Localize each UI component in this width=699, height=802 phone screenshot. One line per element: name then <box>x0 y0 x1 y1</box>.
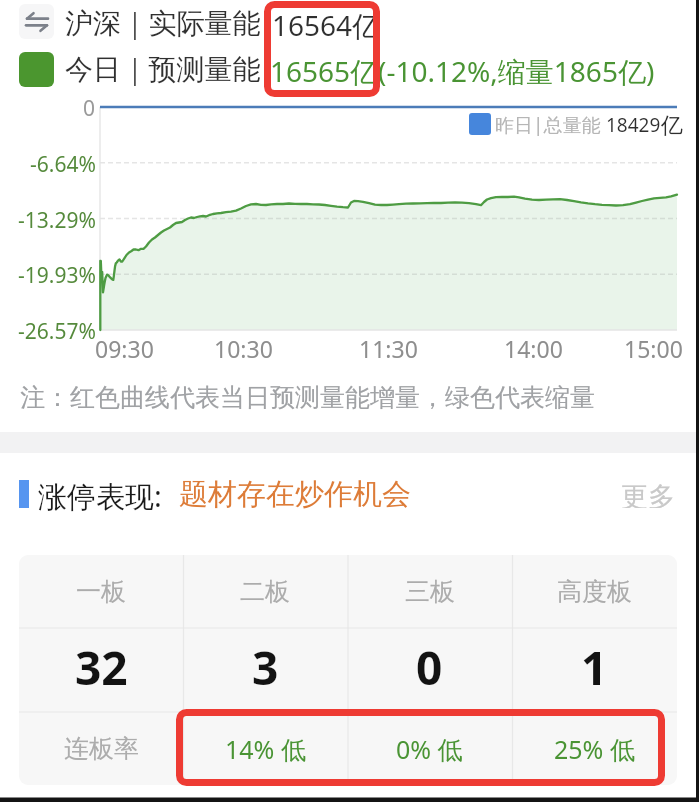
staticText: 0 <box>83 94 96 123</box>
button[interactable]: Switch market <box>19 4 54 39</box>
staticText: 0% 低 <box>396 732 463 766</box>
staticText: 二板 <box>240 576 290 607</box>
staticText: 32 <box>75 636 128 699</box>
staticText: 三板 <box>405 576 455 607</box>
staticText: 注：红色曲线代表当日预测量能增量，绿色代表缩量 <box>20 382 595 413</box>
staticText: 14:00 <box>504 333 563 364</box>
staticText: 09:30 <box>95 333 154 364</box>
staticText: 一板 <box>76 576 126 607</box>
staticText: 更多 <box>621 480 675 508</box>
button[interactable]: 三板 <box>347 555 512 628</box>
staticText: 18429 <box>606 112 661 136</box>
button[interactable]: 高度板 <box>512 555 677 628</box>
staticText: 3 <box>252 636 279 699</box>
button[interactable]: 连板率 <box>19 712 183 785</box>
staticText: 0 <box>416 636 443 699</box>
staticText: -19.93% <box>18 261 96 290</box>
staticText: 高度板 <box>557 576 632 607</box>
staticText: 25% 低 <box>554 732 635 766</box>
staticText: 15:00 <box>624 333 683 364</box>
staticText: 16564亿 <box>272 6 381 41</box>
staticText: 沪深｜实际量能 <box>65 6 261 41</box>
staticText: 连板率 <box>64 733 139 764</box>
staticText: 题材存在炒作机会 <box>179 476 411 512</box>
staticText: 涨停表现: <box>38 476 162 512</box>
button[interactable]: 14% 低 <box>183 712 347 785</box>
staticText: 1 <box>581 636 608 699</box>
button[interactable]: 更多 <box>615 476 681 512</box>
button[interactable]: 0% 低 <box>347 712 512 785</box>
staticText: -13.29% <box>18 206 96 235</box>
staticText: 今日｜预测量能 <box>65 52 261 87</box>
staticText: 11:30 <box>359 333 418 364</box>
staticText: -6.64% <box>30 150 96 179</box>
button[interactable]: 二板 <box>183 555 347 628</box>
staticText: 14% 低 <box>225 732 306 766</box>
staticText: 亿 <box>661 112 683 136</box>
staticText: 16565亿(-10.12%,缩量1865亿) <box>270 52 655 87</box>
staticText: 昨日|总量能 <box>495 112 601 136</box>
staticText: -26.57% <box>18 317 96 346</box>
button[interactable]: 25% 低 <box>512 712 677 785</box>
button[interactable]: 一板 <box>19 555 183 628</box>
staticText: 10:30 <box>214 333 273 364</box>
